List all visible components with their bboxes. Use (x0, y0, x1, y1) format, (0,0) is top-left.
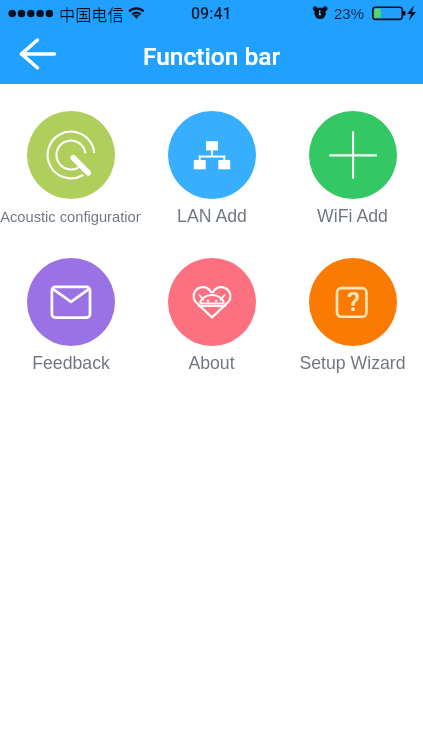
staticText: 23% (334, 5, 365, 22)
staticText: Acoustic configuration (0, 209, 141, 225)
staticText: ? (347, 287, 360, 317)
staticText: 中国电信 (59, 2, 124, 25)
staticText: Feedback (32, 353, 110, 373)
staticText: 09:41 (191, 4, 232, 23)
button[interactable]: About (141, 258, 282, 380)
staticText: Setup Wizard (299, 353, 406, 373)
staticText: LAN Add (177, 206, 247, 226)
button[interactable]: Back (4, 31, 52, 79)
button[interactable]: ? (282, 258, 423, 380)
button[interactable]: LAN Add (141, 111, 282, 233)
staticText: Function bar (143, 42, 281, 71)
button[interactable]: WiFi Add (282, 111, 423, 233)
staticText: WiFi Add (317, 206, 388, 226)
staticText: About (188, 353, 235, 373)
button[interactable]: Acoustic configuration (0, 111, 141, 233)
button[interactable]: Feedback (0, 258, 141, 380)
